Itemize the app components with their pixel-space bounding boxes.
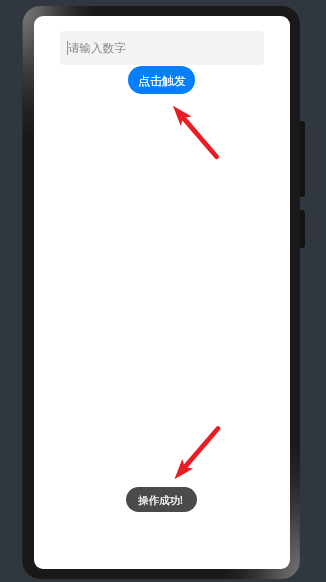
button[interactable]: Power	[294, 210, 305, 248]
staticText: 请输入数字	[68, 41, 126, 55]
staticText: 操作成功!	[138, 493, 183, 507]
button[interactable]: 请输入数字	[60, 31, 264, 65]
button[interactable]: Volume	[294, 121, 305, 197]
button[interactable]: 点击触发	[128, 66, 195, 94]
staticText: 点击触发	[138, 73, 186, 88]
